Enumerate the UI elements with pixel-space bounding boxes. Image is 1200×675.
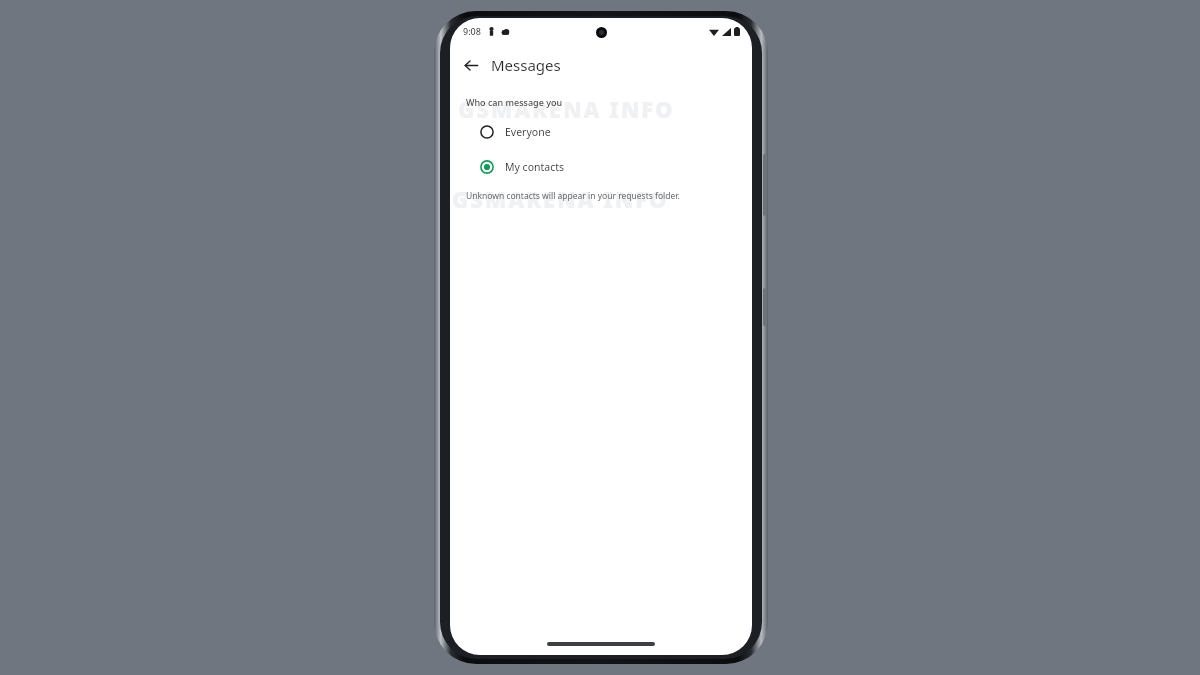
staticText: My contacts <box>505 160 565 174</box>
staticText: 9:08 <box>463 25 481 37</box>
staticText: Everyone <box>505 125 551 139</box>
button[interactable]: Everyone <box>450 114 752 149</box>
button[interactable]: Back <box>456 50 486 80</box>
staticText: GSMARENA INFO <box>458 94 675 124</box>
staticText: Who can message you <box>466 96 563 108</box>
staticText: Unknown contacts will appear in your req… <box>466 190 680 202</box>
button[interactable]: My contacts <box>450 149 752 184</box>
staticText: Messages <box>491 55 561 75</box>
staticText: GSMARENA INFO <box>452 184 669 214</box>
